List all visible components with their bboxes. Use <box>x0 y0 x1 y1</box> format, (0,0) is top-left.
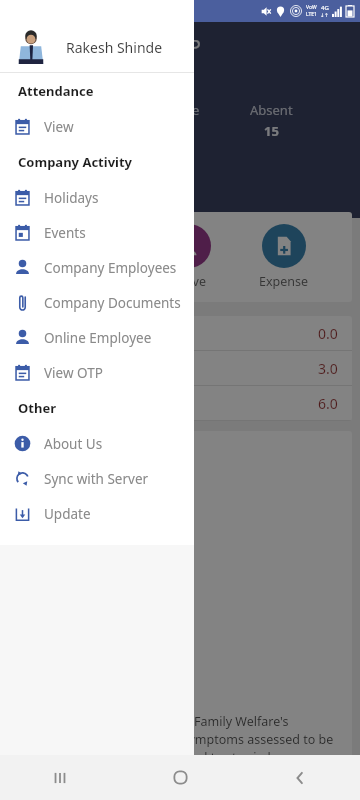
staticText: Privilege Leave <box>22 394 114 412</box>
staticText: Absent <box>250 101 293 119</box>
button[interactable]: Privilege Leave <box>8 386 352 420</box>
button[interactable]: Expense <box>255 224 313 290</box>
staticText: Sick Leave <box>22 359 85 377</box>
staticText: Online Employee <box>44 329 152 347</box>
staticText: Company Documents <box>44 294 181 312</box>
button[interactable]: About Us <box>0 426 194 461</box>
button[interactable]: Company Documents <box>0 285 194 320</box>
button[interactable]: Sync with Server <box>0 461 194 496</box>
button[interactable]: Update <box>0 496 194 531</box>
button[interactable]: Sick Leave <box>8 351 352 385</box>
staticText: Notice <box>20 443 66 462</box>
staticText: Leave <box>164 101 200 119</box>
button[interactable]: Casual Leave <box>8 316 352 350</box>
button[interactable]: Attendance <box>48 224 124 290</box>
button[interactable]: View OTP <box>0 355 194 390</box>
staticText: Sync with Server <box>44 470 149 488</box>
staticText: Leave <box>172 273 207 290</box>
button[interactable]: Back <box>240 755 360 800</box>
staticText: [ 09:30 AM - 06:30 PM ] <box>20 186 160 204</box>
staticText: Expense <box>259 273 309 290</box>
staticText: Rakesh Shinde <box>66 38 163 57</box>
staticText: 6.0 <box>318 394 338 413</box>
staticText: VoW <box>306 4 317 11</box>
staticText: Events <box>44 224 86 242</box>
staticText: Attendance <box>52 273 120 290</box>
staticText: View OTP <box>44 364 103 382</box>
staticText: 0.0 <box>318 324 338 343</box>
staticText: Casual Leave <box>22 324 102 342</box>
staticText: Holidays <box>44 189 99 207</box>
staticText: As per Ministry of Health and Family Wel… <box>20 713 340 784</box>
staticText: Attendance <box>18 82 94 100</box>
button[interactable]: View <box>0 109 194 144</box>
button[interactable]: Recent apps <box>0 755 120 800</box>
staticText: Update <box>44 505 91 523</box>
staticText: Company Activity <box>18 153 133 171</box>
button[interactable]: Rakesh Shinde <box>0 22 194 72</box>
staticText: LTE1 <box>306 11 317 18</box>
button[interactable]: Events <box>0 215 194 250</box>
staticText: View <box>44 118 74 136</box>
staticText: 4G <box>321 4 329 12</box>
staticText: 15 <box>264 122 279 140</box>
staticText: Other <box>18 399 56 417</box>
button[interactable]: Holidays <box>0 180 194 215</box>
staticText: Company Employees <box>44 259 177 277</box>
staticText: About Us <box>44 435 103 453</box>
staticText: ↓↑ <box>320 12 329 18</box>
button[interactable]: Online Employee <box>0 320 194 355</box>
staticText: Shinde & Co LLP <box>56 34 201 60</box>
staticText: 3.0 <box>318 359 338 378</box>
button[interactable]: Leave <box>163 224 215 290</box>
button[interactable]: Company Employees <box>0 250 194 285</box>
button[interactable]: Home <box>120 755 240 800</box>
